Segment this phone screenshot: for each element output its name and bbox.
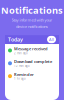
staticText: Download complete: [14, 59, 52, 64]
staticText: 12 min ago: [14, 64, 30, 68]
staticText: Message received: [14, 46, 48, 51]
staticText: Reminder: [14, 72, 34, 77]
button[interactable]: All: [47, 36, 56, 43]
button[interactable]: Message received: [5, 44, 59, 57]
button[interactable]: Download complete: [5, 57, 59, 70]
staticText: All: [49, 37, 54, 42]
staticText: 1 hr ago: [14, 77, 26, 80]
staticText: Notifications: [1, 4, 63, 16]
staticText: 2 min ago: [14, 51, 28, 55]
button[interactable]: Reminder: [5, 70, 59, 83]
staticText: device notifications: [16, 24, 48, 29]
staticText: Stay informed with your: [11, 17, 52, 23]
staticText: Today: [8, 36, 23, 43]
